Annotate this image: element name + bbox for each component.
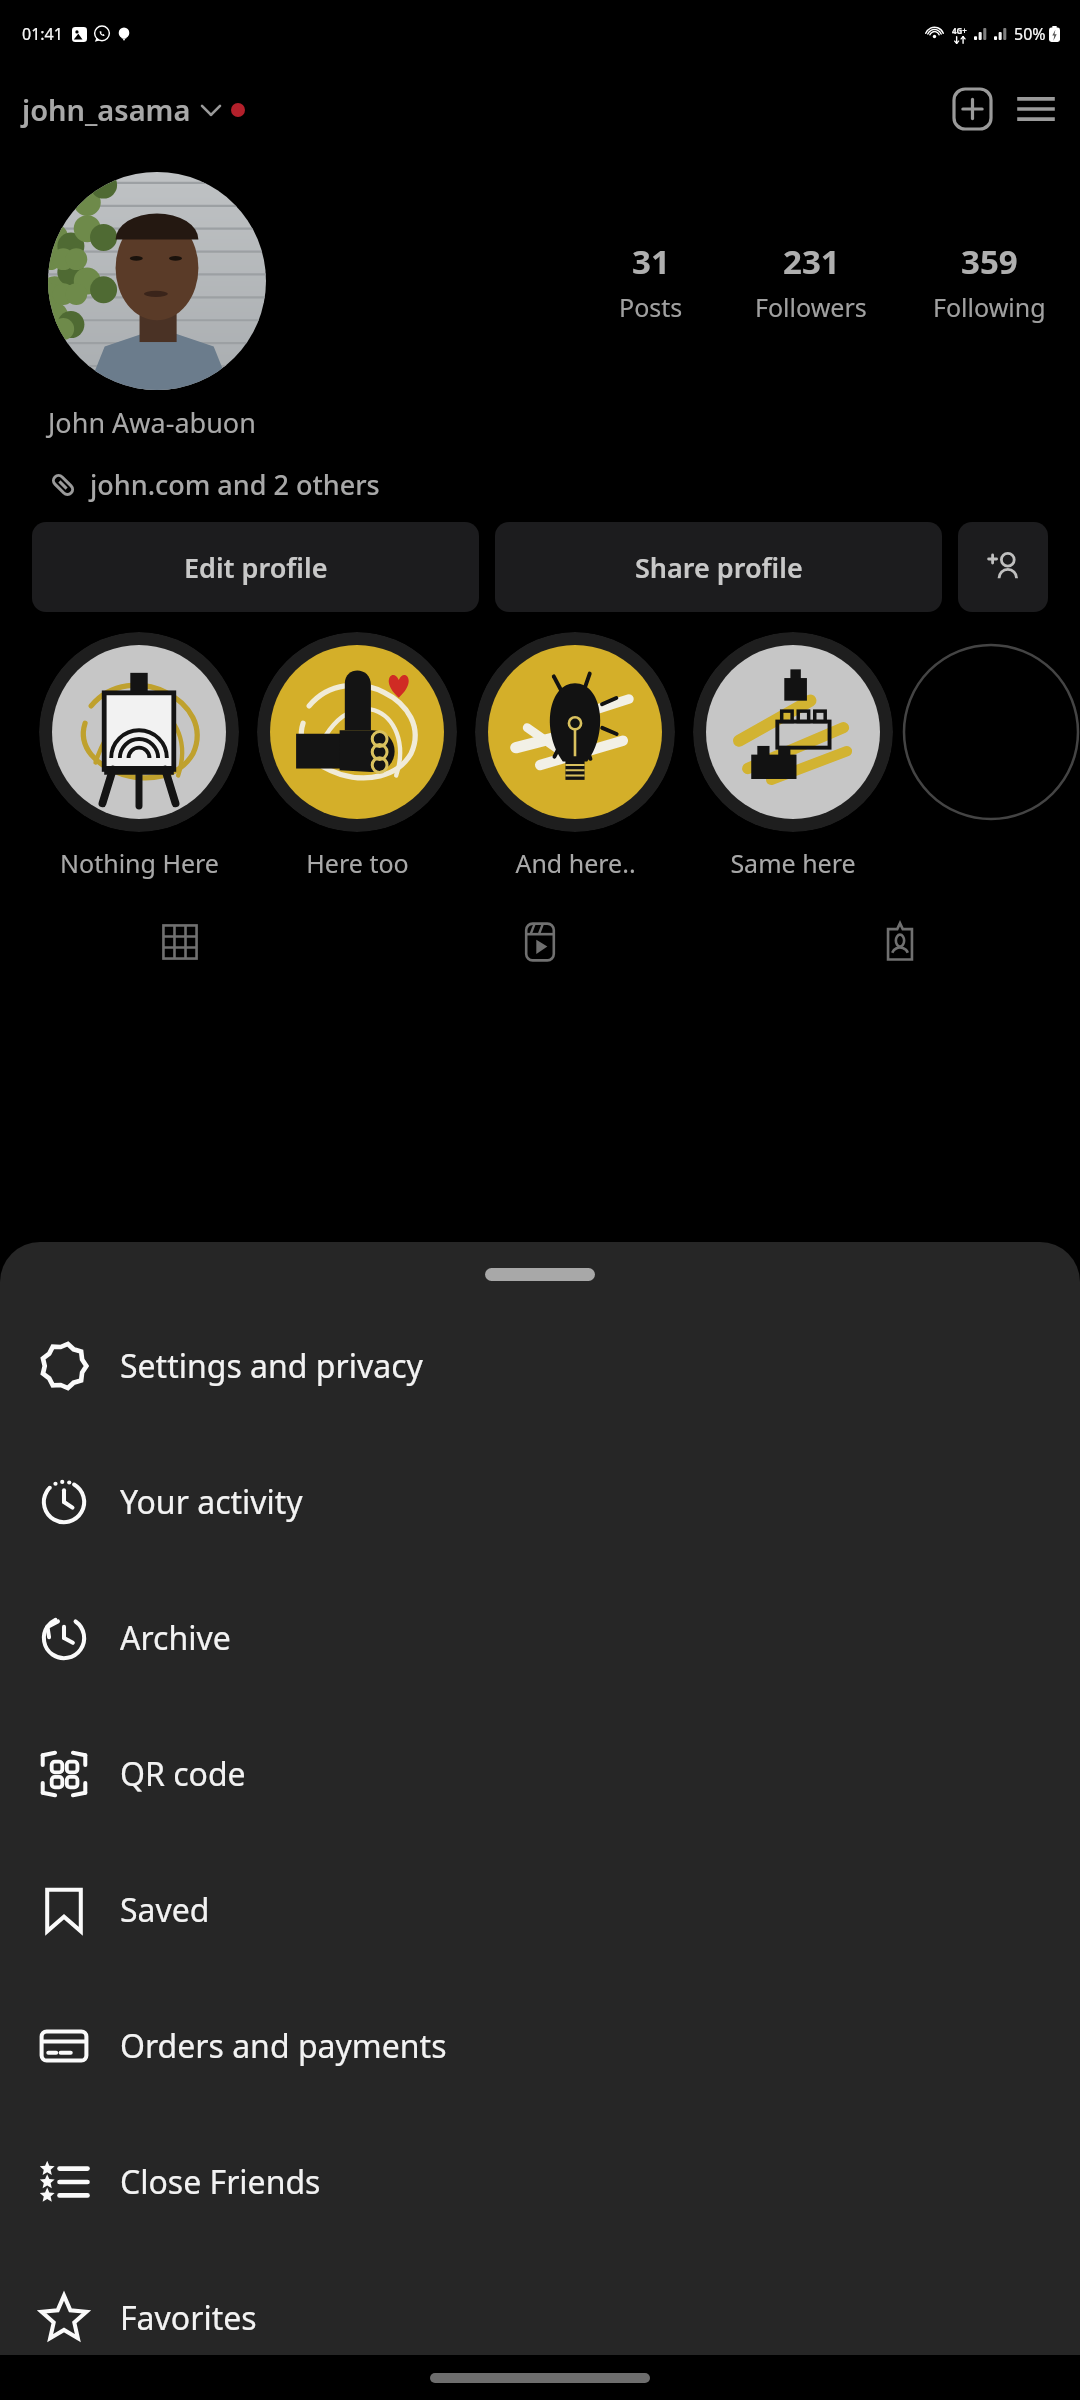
staticText: Nothing Here [60,846,219,880]
button[interactable]: And here.. [466,632,684,880]
staticText: John Awa-abuon [48,404,256,441]
staticText: Favorites [120,2296,257,2340]
staticText: 359 [961,239,1018,284]
button[interactable]: 231 [751,237,871,326]
button[interactable]: Saved [0,1842,1080,1978]
button[interactable]: Orders and payments [0,1978,1080,2114]
button[interactable]: Nothing Here [30,632,248,880]
button[interactable]: Close Friends [0,2114,1080,2250]
staticText: Share profile [635,549,803,586]
button[interactable]: Settings and privacy [0,1298,1080,1434]
staticText: Your activity [120,1480,303,1524]
button[interactable]: Edit profile [32,522,479,612]
button[interactable]: Grid [0,902,360,982]
staticText: Same here [730,846,856,880]
button[interactable]: Reels [360,902,720,982]
button[interactable]: john.com and 2 others [48,463,380,506]
staticText: 01:41 [22,23,63,45]
staticText: john_asama [22,90,191,129]
button[interactable]: Same here [684,632,902,880]
staticText: Close Friends [120,2160,321,2204]
button[interactable]: john_asama [22,84,245,135]
staticText: Saved [120,1888,210,1932]
button[interactable]: Create [950,87,994,131]
staticText: Orders and payments [120,2024,447,2068]
button[interactable]: Your activity [0,1434,1080,1570]
staticText: 31 [632,239,670,284]
staticText: Followers [755,290,867,324]
button[interactable]: Share profile [495,522,942,612]
staticText: Following [933,290,1046,324]
button[interactable]: Archive [0,1570,1080,1706]
staticText: 231 [783,239,840,284]
staticText: Posts [619,290,683,324]
staticText: john.com and 2 others [90,466,380,503]
staticText: 4G+ [952,25,967,36]
button[interactable]: Favorites [0,2250,1080,2386]
button[interactable]: Here too [248,632,466,880]
button[interactable]: Tagged [720,902,1080,982]
staticText: Settings and privacy [120,1344,423,1388]
staticText: Edit profile [184,549,328,586]
staticText: And here.. [515,846,636,880]
staticText: QR code [120,1752,246,1796]
staticText: Archive [120,1616,231,1660]
staticText: 50% [1014,23,1046,45]
button[interactable]: QR code [0,1706,1080,1842]
button[interactable] [48,172,266,390]
button[interactable]: 31 [615,237,687,326]
staticText: Here too [306,846,409,880]
button[interactable]: Discover people [958,522,1048,612]
button[interactable]: Menu [1014,87,1058,131]
button[interactable]: 359 [929,237,1050,326]
